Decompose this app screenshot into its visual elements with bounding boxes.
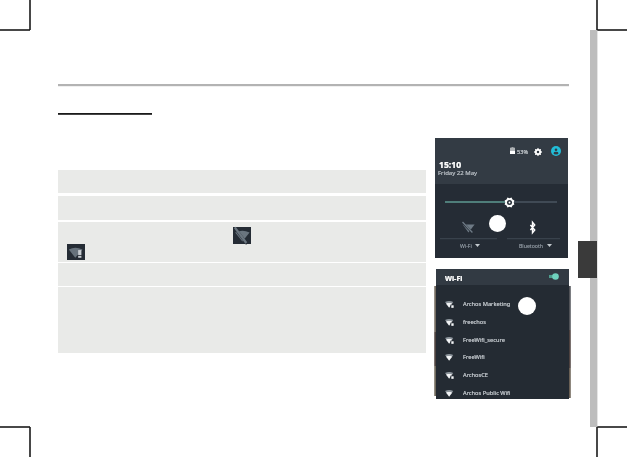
button[interactable]: freechos: [436, 313, 569, 331]
staticText: Bluetooth: [519, 242, 544, 249]
button[interactable]: Account: [551, 146, 561, 156]
button[interactable]: Bluetooth: [519, 242, 552, 249]
button[interactable]: Wi-Fi off: [462, 222, 475, 233]
staticText: freechos: [463, 318, 487, 326]
staticText: Friday 22 May: [438, 169, 478, 177]
button[interactable]: FreeWifi: [436, 348, 569, 366]
button[interactable]: ArchosCE: [436, 366, 569, 384]
staticText: FreeWifi_secure: [463, 336, 505, 344]
staticText: FreeWifi: [463, 353, 485, 361]
staticText: ArchosCE: [463, 371, 489, 379]
button[interactable]: Wi-Fi: [460, 242, 480, 249]
staticText: Archos Marketing: [463, 300, 511, 308]
staticText: Wi-Fi: [460, 242, 472, 249]
staticText: Wi-Fi: [445, 273, 463, 283]
button[interactable]: Bluetooth: [529, 222, 536, 233]
button[interactable]: Archos Marketing: [436, 295, 569, 313]
staticText: 15:10: [439, 159, 462, 171]
staticText: Archos Public Wifi: [463, 389, 511, 397]
staticText: 53%: [517, 148, 529, 156]
button[interactable]: Settings: [533, 147, 543, 157]
button[interactable]: FreeWifi_secure: [436, 331, 569, 349]
button[interactable]: Wi-Fi toggle: [549, 271, 559, 282]
button[interactable]: Archos Public Wifi: [436, 384, 569, 402]
